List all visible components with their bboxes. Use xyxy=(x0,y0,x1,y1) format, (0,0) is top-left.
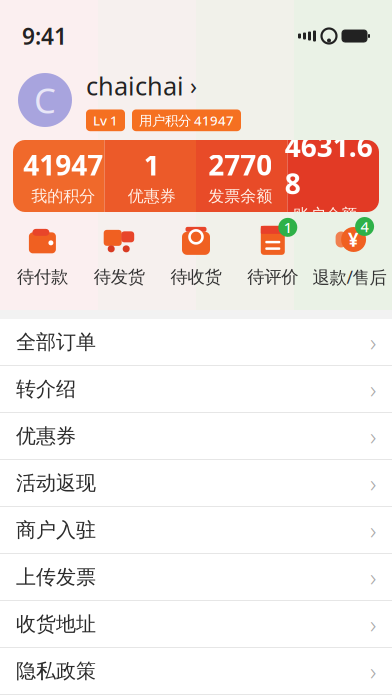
staticText: › xyxy=(370,373,376,405)
staticText: 9:41 xyxy=(22,21,67,51)
button[interactable]: 全部订单 xyxy=(0,319,392,366)
button[interactable]: 待收货 xyxy=(158,222,234,288)
button[interactable]: C xyxy=(0,60,392,140)
button[interactable]: 优惠券 xyxy=(0,413,392,460)
button[interactable]: 待付款 xyxy=(4,222,81,288)
staticText: 转介绍 xyxy=(16,377,76,401)
button[interactable]: 隐私政策 xyxy=(0,648,392,695)
button[interactable]: ¥ xyxy=(311,221,388,288)
staticText: 上传发票 xyxy=(16,565,96,589)
staticText: › xyxy=(370,514,376,546)
staticText: 1 xyxy=(284,218,292,237)
staticText: 待付款 xyxy=(17,266,68,288)
staticText: 商户入驻 xyxy=(16,518,96,542)
staticText: › xyxy=(359,205,364,224)
staticText: › xyxy=(370,561,376,593)
staticText: 待评价 xyxy=(247,266,298,288)
staticText: 4 xyxy=(361,217,369,236)
staticText: chaichai xyxy=(86,69,184,102)
staticText: 退款/售后 xyxy=(313,265,387,288)
staticText: 用户积分 41947 xyxy=(139,111,234,129)
button[interactable]: 转介绍 xyxy=(0,366,392,413)
staticText: 优惠券 xyxy=(128,186,176,206)
staticText: › xyxy=(190,71,197,101)
staticText: 收货地址 xyxy=(16,612,96,636)
button[interactable]: 上传发票 xyxy=(0,554,392,601)
button[interactable]: 待发货 xyxy=(81,222,158,288)
button[interactable]: 41947 xyxy=(0,140,392,212)
staticText: 优惠券 xyxy=(16,424,76,448)
staticText: 2770 xyxy=(208,146,272,183)
staticText: › xyxy=(370,655,376,687)
button[interactable]: 1 xyxy=(234,222,311,288)
staticText: 全部订单 xyxy=(16,330,96,354)
staticText: 4631.68 xyxy=(285,127,373,202)
staticText: 隐私政策 xyxy=(16,659,96,683)
staticText: 待发货 xyxy=(94,266,145,288)
staticText: › xyxy=(370,608,376,640)
button[interactable]: 商户入驻 xyxy=(0,507,392,554)
staticText: 账户余额 xyxy=(293,205,357,225)
staticText: 发票余额 xyxy=(208,186,272,206)
staticText: › xyxy=(370,326,376,358)
staticText: 1 xyxy=(144,146,160,183)
staticText: C xyxy=(34,77,56,123)
staticText: › xyxy=(370,467,376,499)
staticText: Lv 1 xyxy=(93,111,118,129)
staticText: 活动返现 xyxy=(16,471,96,495)
staticText: 待收货 xyxy=(170,266,221,288)
staticText: 我的积分 xyxy=(31,186,95,206)
staticText: ¥ xyxy=(348,227,359,252)
button[interactable]: 收货地址 xyxy=(0,601,392,648)
staticText: 41947 xyxy=(23,146,103,183)
staticText: › xyxy=(370,420,376,452)
button[interactable]: 活动返现 xyxy=(0,460,392,507)
